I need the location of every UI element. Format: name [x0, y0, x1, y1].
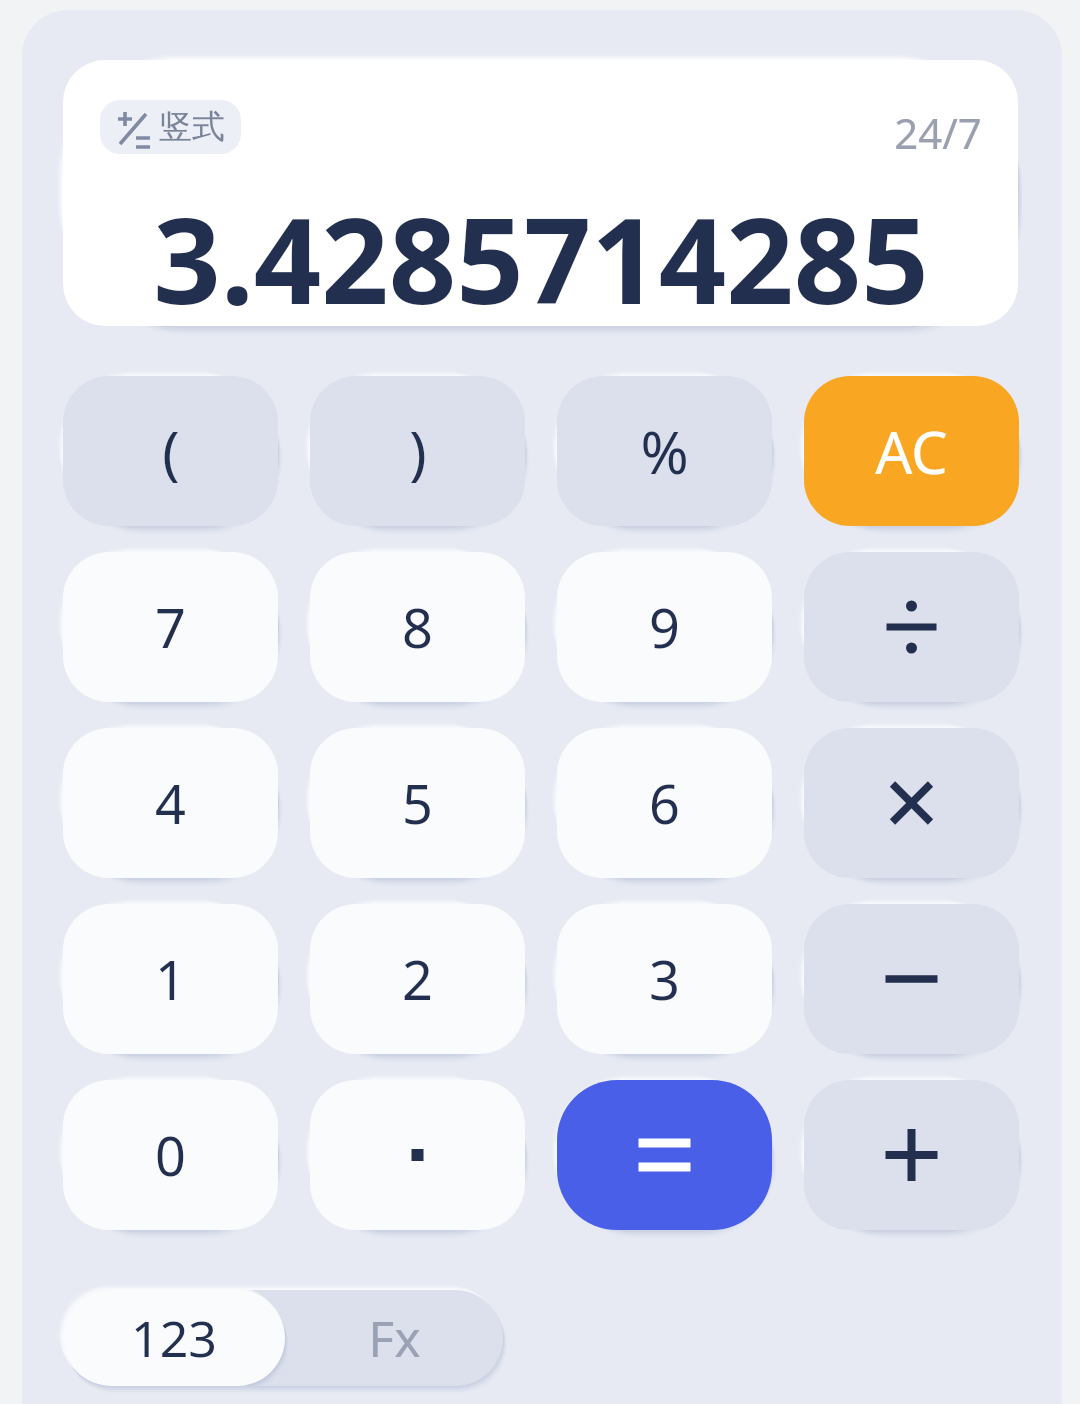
button[interactable]: 竖式 — [100, 100, 241, 154]
button[interactable]: Fx — [285, 1290, 503, 1386]
button[interactable]: 6 — [557, 728, 772, 878]
button[interactable]: Minus — [804, 904, 1019, 1054]
button[interactable]: 2 — [310, 904, 525, 1054]
staticText: 5 — [402, 766, 433, 840]
staticText: 8 — [402, 590, 433, 664]
staticText: ( — [162, 412, 180, 491]
button[interactable]: 4 — [63, 728, 278, 878]
staticText: 9 — [649, 590, 680, 664]
button[interactable]: ) — [310, 376, 525, 526]
button[interactable]: AC — [804, 376, 1019, 526]
button[interactable]: Divide — [804, 552, 1019, 702]
staticText: 3.4285714285 — [153, 178, 929, 326]
button[interactable]: 1 — [63, 904, 278, 1054]
staticText: 24/7 — [894, 104, 982, 161]
button[interactable]: Multiply — [804, 728, 1019, 878]
button[interactable]: 9 — [557, 552, 772, 702]
staticText: 2 — [402, 942, 433, 1016]
staticText: ) — [409, 412, 427, 491]
button[interactable]: 5 — [310, 728, 525, 878]
button[interactable]: Plus — [804, 1080, 1019, 1230]
staticText: 0 — [155, 1118, 186, 1192]
staticText: AC — [875, 412, 948, 491]
staticText: Fx — [368, 1304, 421, 1372]
button[interactable]: 3 — [557, 904, 772, 1054]
staticText: 123 — [131, 1304, 217, 1372]
staticText: 3 — [649, 942, 680, 1016]
button[interactable]: Equals — [557, 1080, 772, 1230]
staticText: 7 — [155, 590, 186, 664]
button[interactable]: 8 — [310, 552, 525, 702]
button[interactable]: Decimal point — [310, 1080, 525, 1230]
staticText: 4 — [155, 766, 186, 840]
staticText: 1 — [155, 942, 186, 1016]
staticText: 竖式 — [159, 106, 225, 148]
staticText: % — [640, 412, 689, 491]
button[interactable]: 0 — [63, 1080, 278, 1230]
button[interactable]: % — [557, 376, 772, 526]
button[interactable]: 123 — [63, 1290, 285, 1386]
button[interactable]: 7 — [63, 552, 278, 702]
staticText: 6 — [649, 766, 680, 840]
button[interactable]: ( — [63, 376, 278, 526]
